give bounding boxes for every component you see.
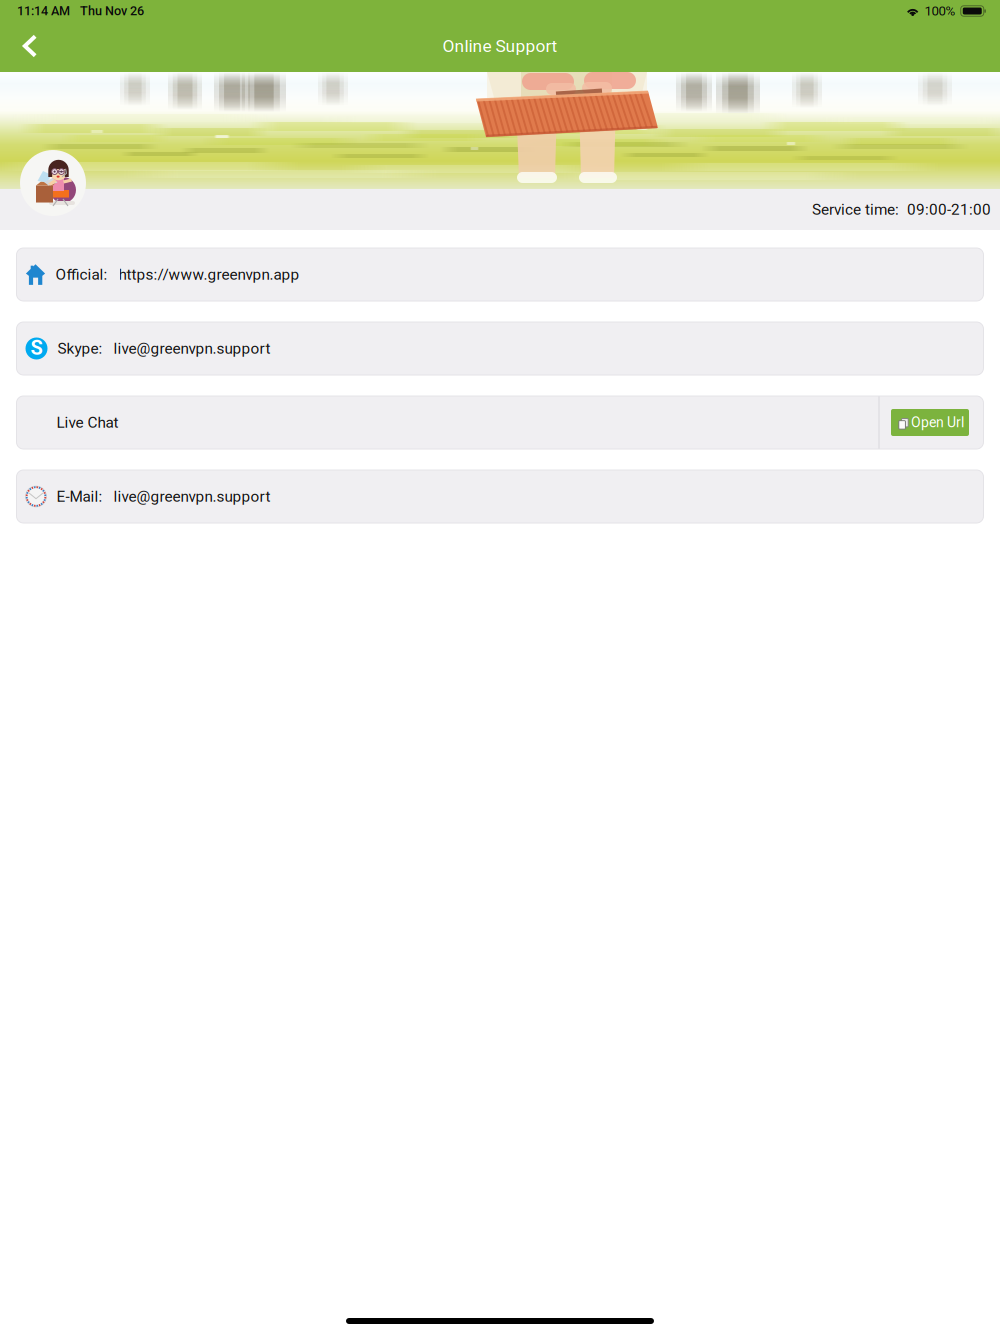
button[interactable]: E-Mail:	[16, 470, 983, 523]
staticText: https://www.greenvpn.app	[118, 265, 299, 283]
button[interactable]: Back	[0, 24, 60, 68]
staticText: Thu Nov 26	[80, 4, 144, 18]
button[interactable]: Official:	[16, 248, 983, 301]
staticText: Service time:	[812, 200, 899, 218]
staticText: E-Mail:	[56, 487, 102, 505]
staticText: S	[30, 336, 42, 360]
staticText: Open Url	[911, 414, 964, 431]
staticText: 09:00-21:00	[907, 200, 991, 218]
staticText: live@greenvpn.support	[113, 487, 270, 505]
staticText: Official:	[55, 265, 107, 283]
staticText: live@greenvpn.support	[113, 339, 270, 357]
staticText: Online Support	[442, 36, 557, 56]
staticText: Live Chat	[56, 413, 118, 431]
staticText: Skype:	[57, 339, 102, 357]
staticText: 100%	[924, 3, 955, 19]
button[interactable]: Live Chat	[16, 396, 983, 449]
button[interactable]: S	[16, 322, 983, 375]
staticText: 11:14 AM	[17, 4, 70, 18]
